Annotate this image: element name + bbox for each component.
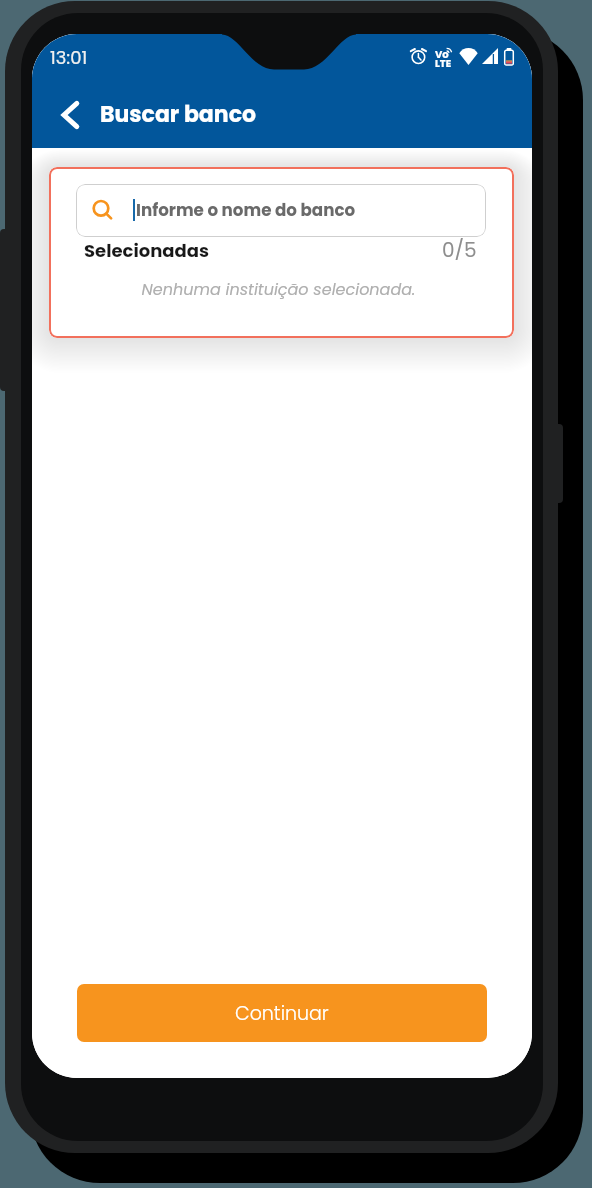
- staticText: Vo: [435, 47, 449, 61]
- staticText: Continuar: [235, 1000, 329, 1027]
- staticText: Nenhuma instituição selecionada.: [46, 278, 511, 300]
- staticText: LTE: [435, 56, 452, 70]
- staticText: 0/5: [442, 236, 477, 264]
- staticText: Informe o nome do banco: [136, 198, 356, 221]
- staticText: 13:01: [50, 45, 88, 70]
- button[interactable]: Continuar: [77, 984, 487, 1042]
- staticText: Buscar banco: [100, 99, 256, 130]
- button[interactable]: Informe o nome do banco: [76, 184, 486, 237]
- button[interactable]: Voltar: [49, 94, 91, 136]
- staticText: Selecionadas: [84, 238, 210, 263]
